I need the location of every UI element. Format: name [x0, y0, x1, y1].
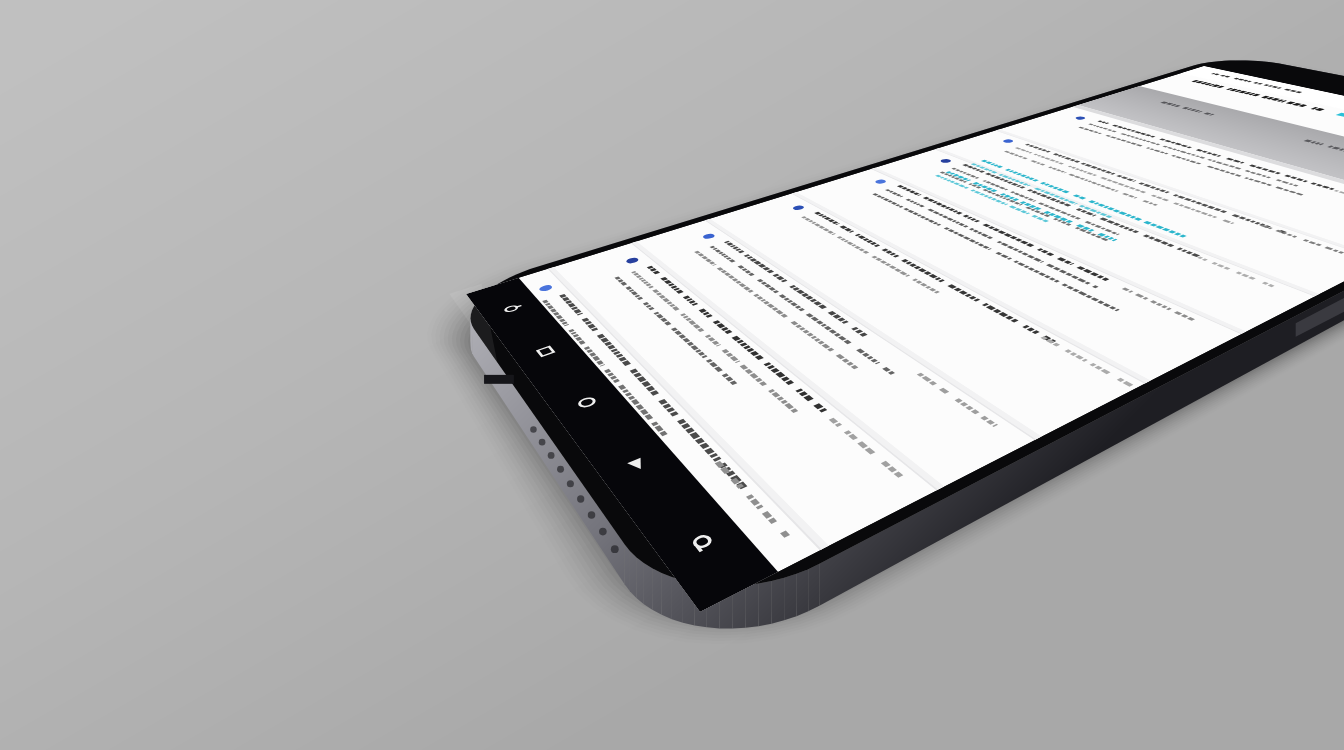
- button[interactable]: Home: [534, 364, 643, 445]
- button[interactable]: Search: [630, 485, 776, 609]
- button[interactable]: [844, 152, 1302, 350]
- button[interactable]: Recent apps: [498, 319, 594, 386]
- button[interactable]: [672, 200, 1115, 461]
- button[interactable]: [926, 129, 1344, 300]
- button[interactable]: [770, 177, 1206, 396]
- button[interactable]: [999, 108, 1344, 259]
- button[interactable]: Back: [469, 281, 555, 338]
- button[interactable]: [462, 260, 857, 614]
- button[interactable]: [577, 231, 988, 528]
- button[interactable]: Play: [577, 418, 702, 517]
